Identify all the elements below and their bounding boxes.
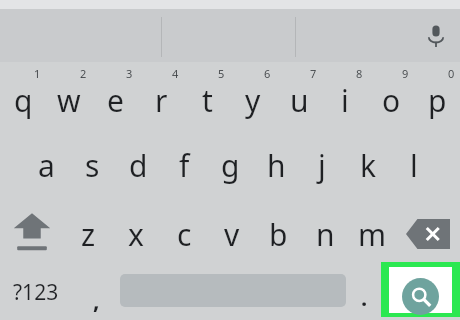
- staticText: 2: [80, 66, 87, 81]
- staticText: 3: [126, 66, 133, 81]
- button[interactable]: l: [391, 133, 437, 197]
- button[interactable]: x: [112, 203, 160, 265]
- button[interactable]: m: [349, 203, 396, 265]
- staticText: 7: [310, 66, 317, 81]
- staticText: x: [128, 214, 144, 255]
- staticText: u: [290, 80, 309, 121]
- staticText: 4: [172, 66, 179, 81]
- staticText: p: [428, 80, 447, 121]
- button[interactable]: 0: [414, 62, 460, 128]
- button[interactable]: a: [23, 133, 69, 197]
- button[interactable]: g: [207, 133, 253, 197]
- staticText: m: [358, 214, 387, 255]
- button[interactable]: z: [64, 203, 112, 265]
- button[interactable]: f: [161, 133, 207, 197]
- staticText: v: [224, 214, 240, 255]
- button[interactable]: 6: [230, 62, 276, 128]
- button[interactable]: 8: [322, 62, 368, 128]
- staticText: a: [38, 145, 55, 186]
- staticText: ?123: [13, 278, 59, 307]
- staticText: 0: [448, 66, 455, 81]
- button[interactable]: Search: [381, 262, 460, 317]
- staticText: z: [81, 214, 96, 255]
- staticText: g: [221, 145, 240, 186]
- button[interactable]: d: [115, 133, 161, 197]
- staticText: 1: [34, 66, 41, 81]
- button[interactable]: .: [348, 265, 381, 320]
- staticText: ,: [93, 284, 100, 315]
- staticText: l: [410, 145, 418, 186]
- button[interactable]: 1: [0, 62, 46, 128]
- button[interactable]: Backspace: [396, 203, 460, 265]
- button[interactable]: 4: [138, 62, 184, 128]
- staticText: 6: [264, 66, 271, 81]
- button[interactable]: v: [208, 203, 255, 265]
- button[interactable]: ?123: [0, 265, 72, 320]
- staticText: i: [341, 80, 349, 121]
- button[interactable]: 5: [184, 62, 230, 128]
- staticText: q: [14, 80, 33, 121]
- staticText: 8: [356, 66, 363, 81]
- staticText: j: [318, 145, 326, 186]
- button[interactable]: 7: [276, 62, 322, 128]
- button[interactable]: 9: [368, 62, 414, 128]
- staticText: e: [107, 80, 124, 121]
- staticText: 5: [218, 66, 225, 81]
- staticText: d: [129, 145, 148, 186]
- button[interactable]: 2: [46, 62, 92, 128]
- staticText: w: [57, 80, 81, 121]
- button[interactable]: Voice input: [412, 15, 460, 57]
- staticText: o: [382, 80, 401, 121]
- button[interactable]: b: [255, 203, 302, 265]
- staticText: .: [361, 282, 368, 312]
- staticText: h: [267, 145, 286, 186]
- staticText: n: [316, 214, 335, 255]
- button[interactable]: n: [302, 203, 349, 265]
- button[interactable]: j: [299, 133, 345, 197]
- staticText: t: [202, 80, 213, 121]
- button[interactable]: ,: [72, 265, 120, 320]
- button[interactable]: Shift: [0, 203, 64, 265]
- staticText: b: [269, 214, 288, 255]
- staticText: c: [177, 214, 192, 255]
- button[interactable]: k: [345, 133, 391, 197]
- button[interactable]: c: [160, 203, 208, 265]
- button[interactable]: h: [253, 133, 299, 197]
- button[interactable]: s: [69, 133, 115, 197]
- staticText: 9: [402, 66, 409, 81]
- button[interactable]: 3: [92, 62, 138, 128]
- staticText: r: [155, 80, 168, 121]
- staticText: s: [85, 145, 100, 186]
- staticText: y: [245, 80, 261, 121]
- staticText: f: [179, 145, 190, 186]
- staticText: k: [360, 145, 377, 186]
